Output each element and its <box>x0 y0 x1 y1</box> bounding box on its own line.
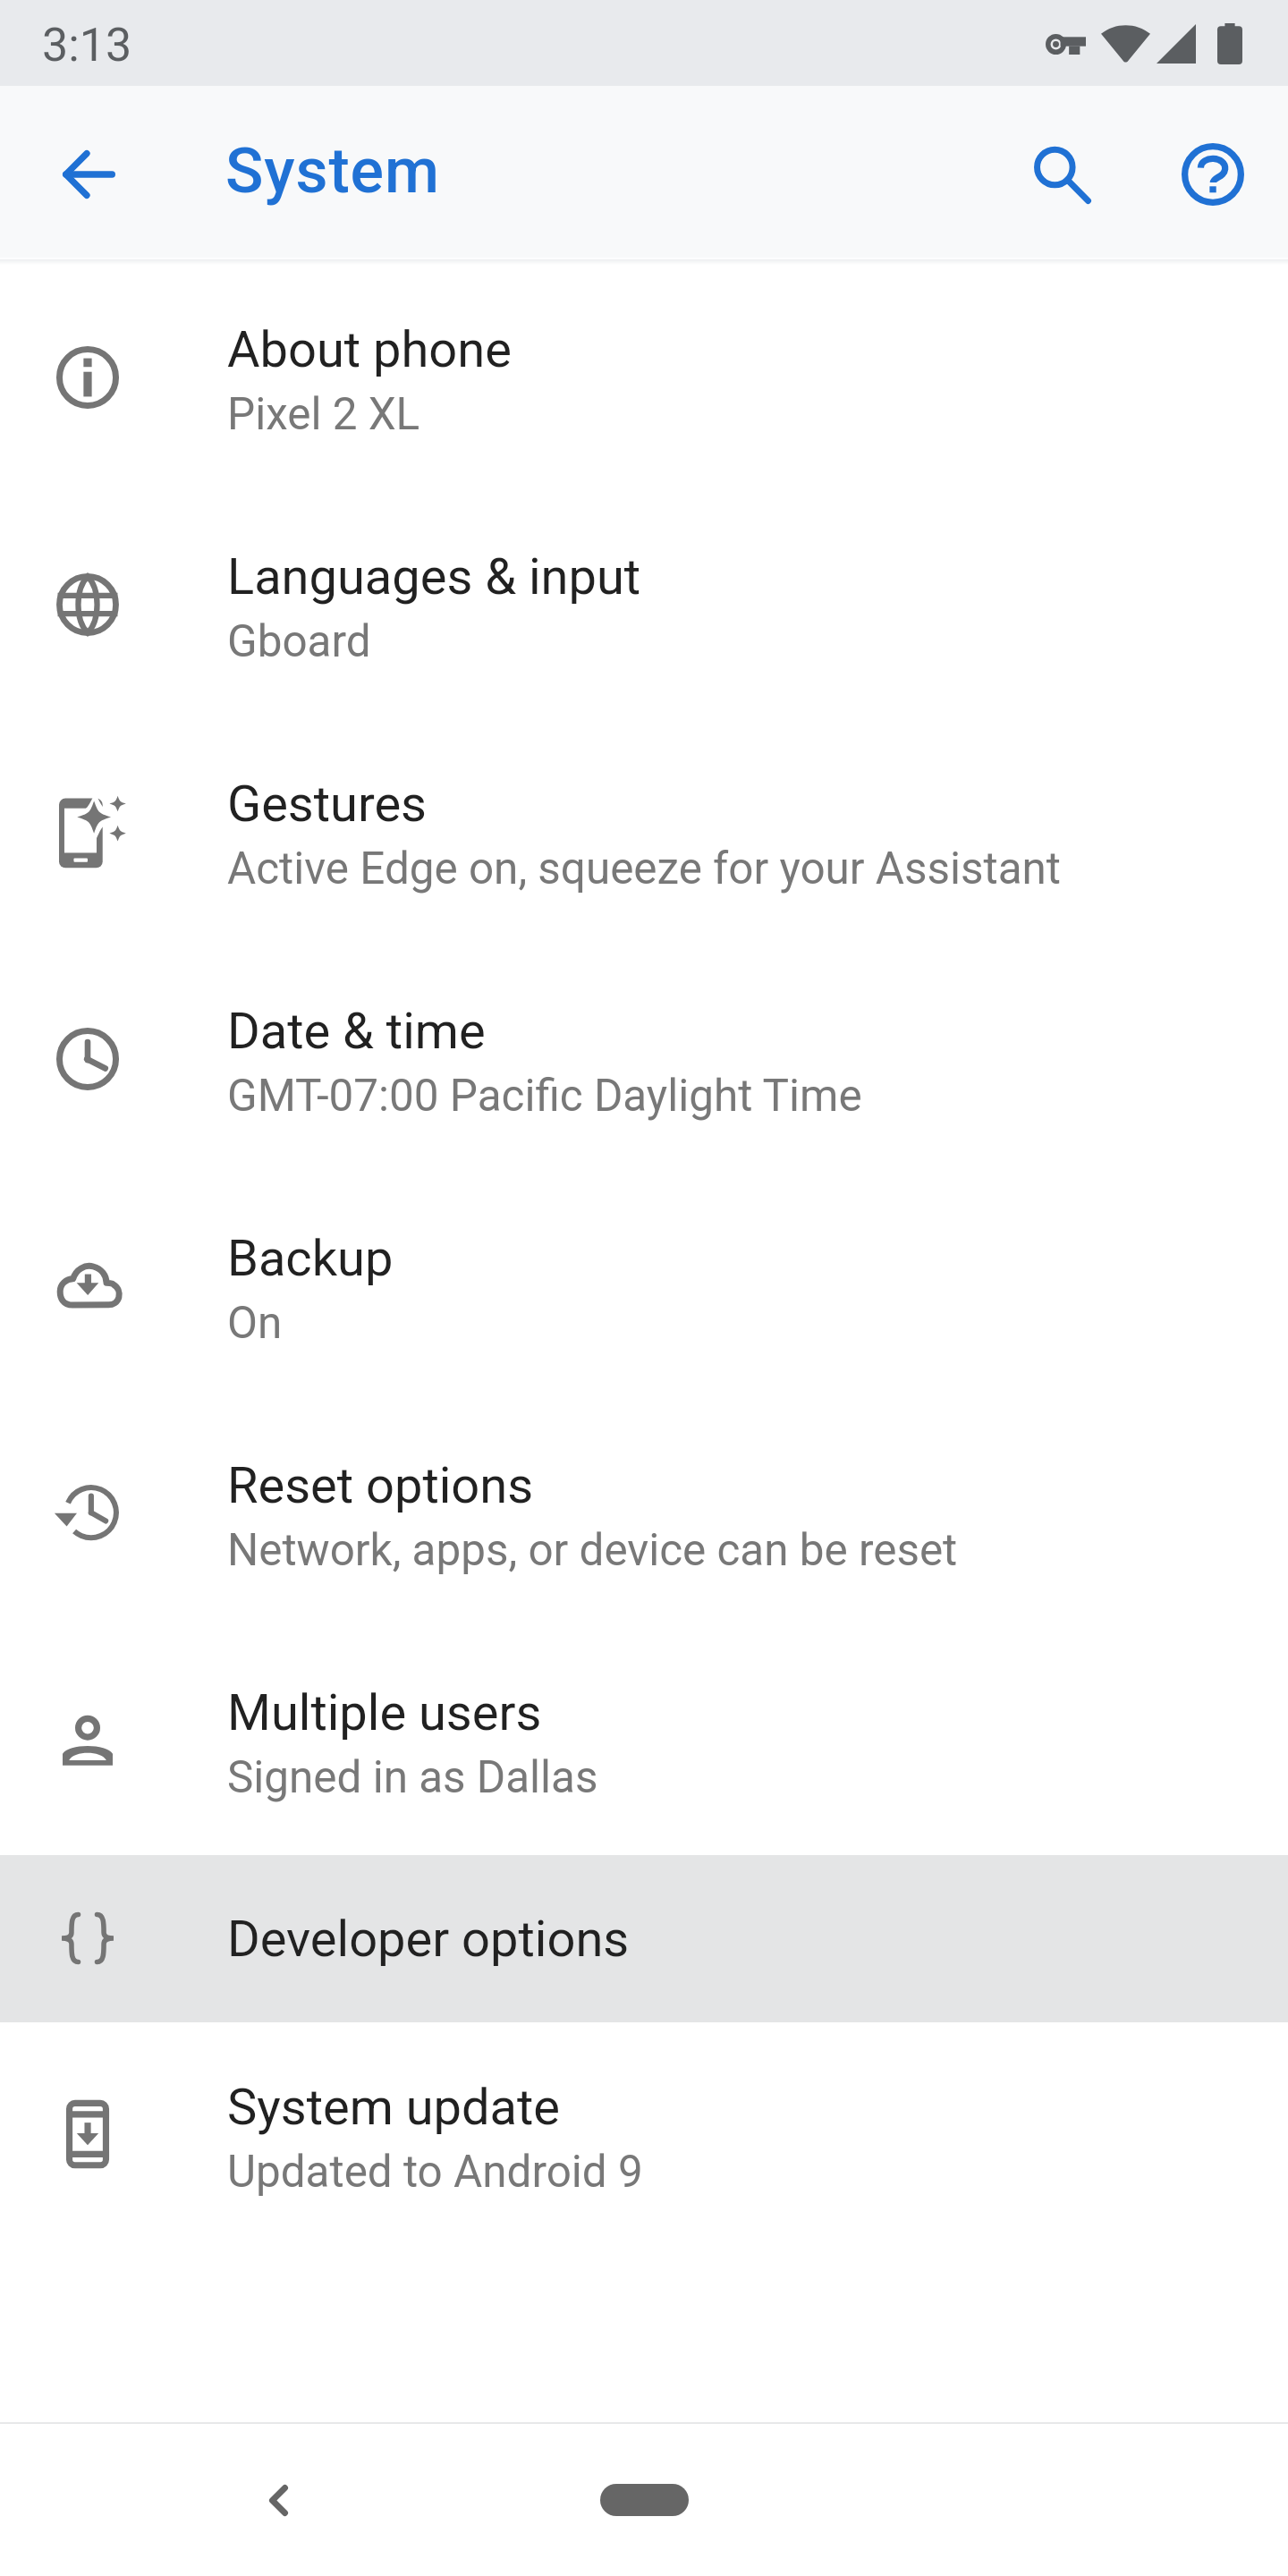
staticText: On <box>227 1297 283 1349</box>
staticText: Multiple users <box>227 1683 542 1742</box>
button[interactable]: Date & time <box>0 946 1288 1174</box>
staticText: Pixel 2 XL <box>227 388 420 440</box>
staticText: GMT-07:00 Pacific Daylight Time <box>227 1070 862 1122</box>
button[interactable]: Help <box>1156 117 1270 232</box>
staticText: System update <box>227 2078 561 2137</box>
staticText: Developer options <box>227 1910 630 1969</box>
button[interactable]: System update <box>0 2022 1288 2250</box>
staticText: 3:13 <box>42 18 132 72</box>
button[interactable]: Navigate up <box>31 117 146 232</box>
button[interactable]: Gestures <box>0 719 1288 946</box>
button[interactable]: Multiple users <box>0 1628 1288 1855</box>
button[interactable]: Back <box>221 2443 335 2557</box>
staticText: Signed in as Dallas <box>227 1751 598 1803</box>
staticText: About phone <box>227 320 512 379</box>
button[interactable]: About phone <box>0 265 1288 492</box>
staticText: Updated to Android 9 <box>227 2146 643 2198</box>
staticText: Gestures <box>227 775 427 834</box>
staticText: Reset options <box>227 1456 534 1515</box>
staticText: System <box>225 134 440 208</box>
staticText: Languages & input <box>227 547 641 606</box>
button[interactable]: Languages & input <box>0 492 1288 719</box>
staticText: Date & time <box>227 1002 486 1061</box>
staticText: Network, apps, or device can be reset <box>227 1524 958 1576</box>
button[interactable]: Search <box>1005 118 1120 233</box>
button[interactable]: Backup <box>0 1174 1288 1401</box>
button[interactable]: Reset options <box>0 1401 1288 1628</box>
staticText: Active Edge on, squeeze for your Assista… <box>227 843 1061 894</box>
staticText: Gboard <box>227 615 371 667</box>
staticText: Backup <box>227 1229 394 1288</box>
button[interactable]: Home <box>572 2457 716 2543</box>
button[interactable]: Developer options <box>0 1855 1288 2022</box>
